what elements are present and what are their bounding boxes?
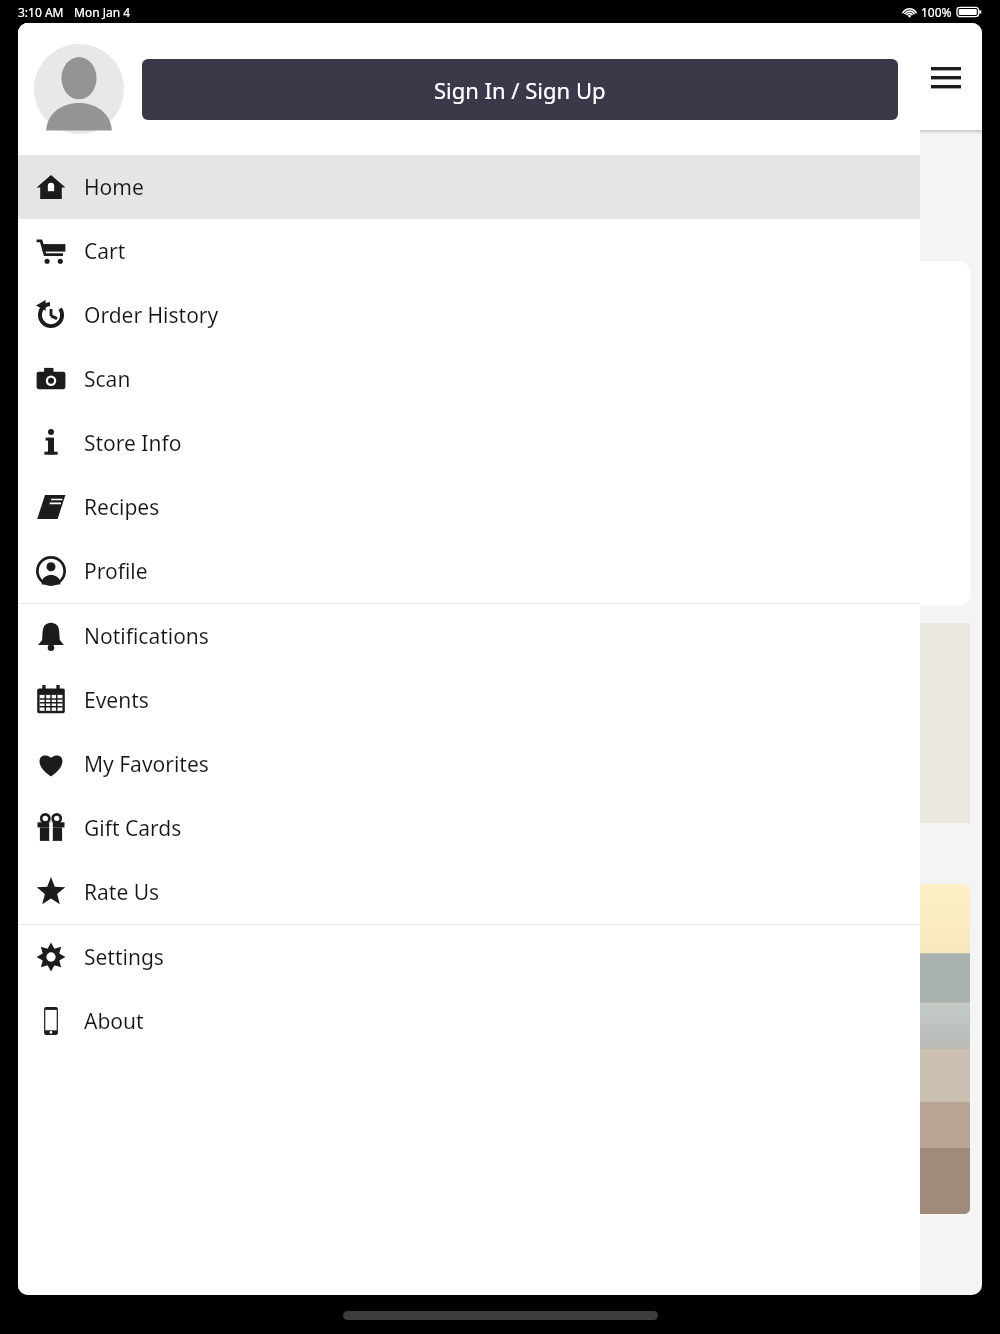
button[interactable]: My Favorites <box>18 732 920 796</box>
button[interactable]: Order History <box>18 283 920 347</box>
button[interactable]: Open navigation menu <box>924 55 968 99</box>
button[interactable]: Gift Cards <box>18 796 920 860</box>
staticText: Rate Us <box>84 878 160 907</box>
staticText: Store Info <box>84 429 182 458</box>
staticText: Gift Cards <box>84 814 182 843</box>
staticText: Profile <box>84 557 148 586</box>
button[interactable]: Settings <box>18 925 920 989</box>
staticText: Cart <box>84 237 126 266</box>
staticText: 100% <box>921 4 952 20</box>
staticText: Settings <box>84 943 164 972</box>
button[interactable]: Rate Us <box>18 860 920 924</box>
button[interactable]: About <box>18 989 920 1053</box>
button[interactable]: Recipes <box>18 475 920 539</box>
button[interactable]: Sign In / Sign Up <box>142 59 898 120</box>
staticText: Recipes <box>84 493 160 522</box>
staticText: Notifications <box>84 622 209 651</box>
button[interactable]: Store Info <box>18 411 920 475</box>
staticText: My Favorites <box>84 750 209 779</box>
staticText: Scan <box>84 365 131 394</box>
button[interactable]: Scan <box>18 347 920 411</box>
button[interactable]: Cart <box>18 219 920 283</box>
staticText: Events <box>84 686 149 715</box>
staticText: Home <box>84 173 144 202</box>
button[interactable]: Home <box>18 155 920 219</box>
staticText: Order History <box>84 301 219 330</box>
staticText: About <box>84 1007 144 1036</box>
button[interactable]: Profile <box>18 539 920 603</box>
staticText: 3:10 AM <box>18 4 64 20</box>
button[interactable]: Events <box>18 668 920 732</box>
staticText: COUPONS <box>30 837 141 868</box>
staticText: Sign In / Sign Up <box>434 75 606 105</box>
button[interactable]: Notifications <box>18 604 920 668</box>
staticText: Mon Jan 4 <box>74 4 131 20</box>
